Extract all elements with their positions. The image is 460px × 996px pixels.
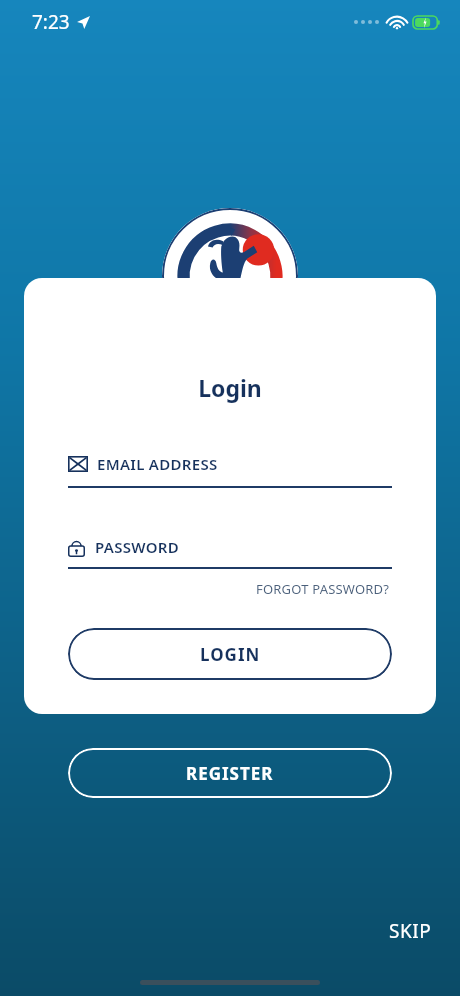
button[interactable]: SKIP	[381, 910, 440, 952]
staticText: PASSWORD	[95, 537, 180, 557]
staticText: LOGIN	[200, 643, 261, 666]
button[interactable]: FORGOT PASSWORD?	[254, 578, 392, 600]
staticText: Login	[24, 372, 436, 403]
staticText: REGISTER	[186, 762, 274, 785]
staticText: SKIP	[389, 918, 432, 944]
staticText: 7:23	[32, 9, 70, 35]
staticText: EMAIL ADDRESS	[97, 454, 218, 474]
button[interactable]: REGISTER	[68, 748, 392, 798]
button[interactable]: LOGIN	[68, 628, 392, 680]
